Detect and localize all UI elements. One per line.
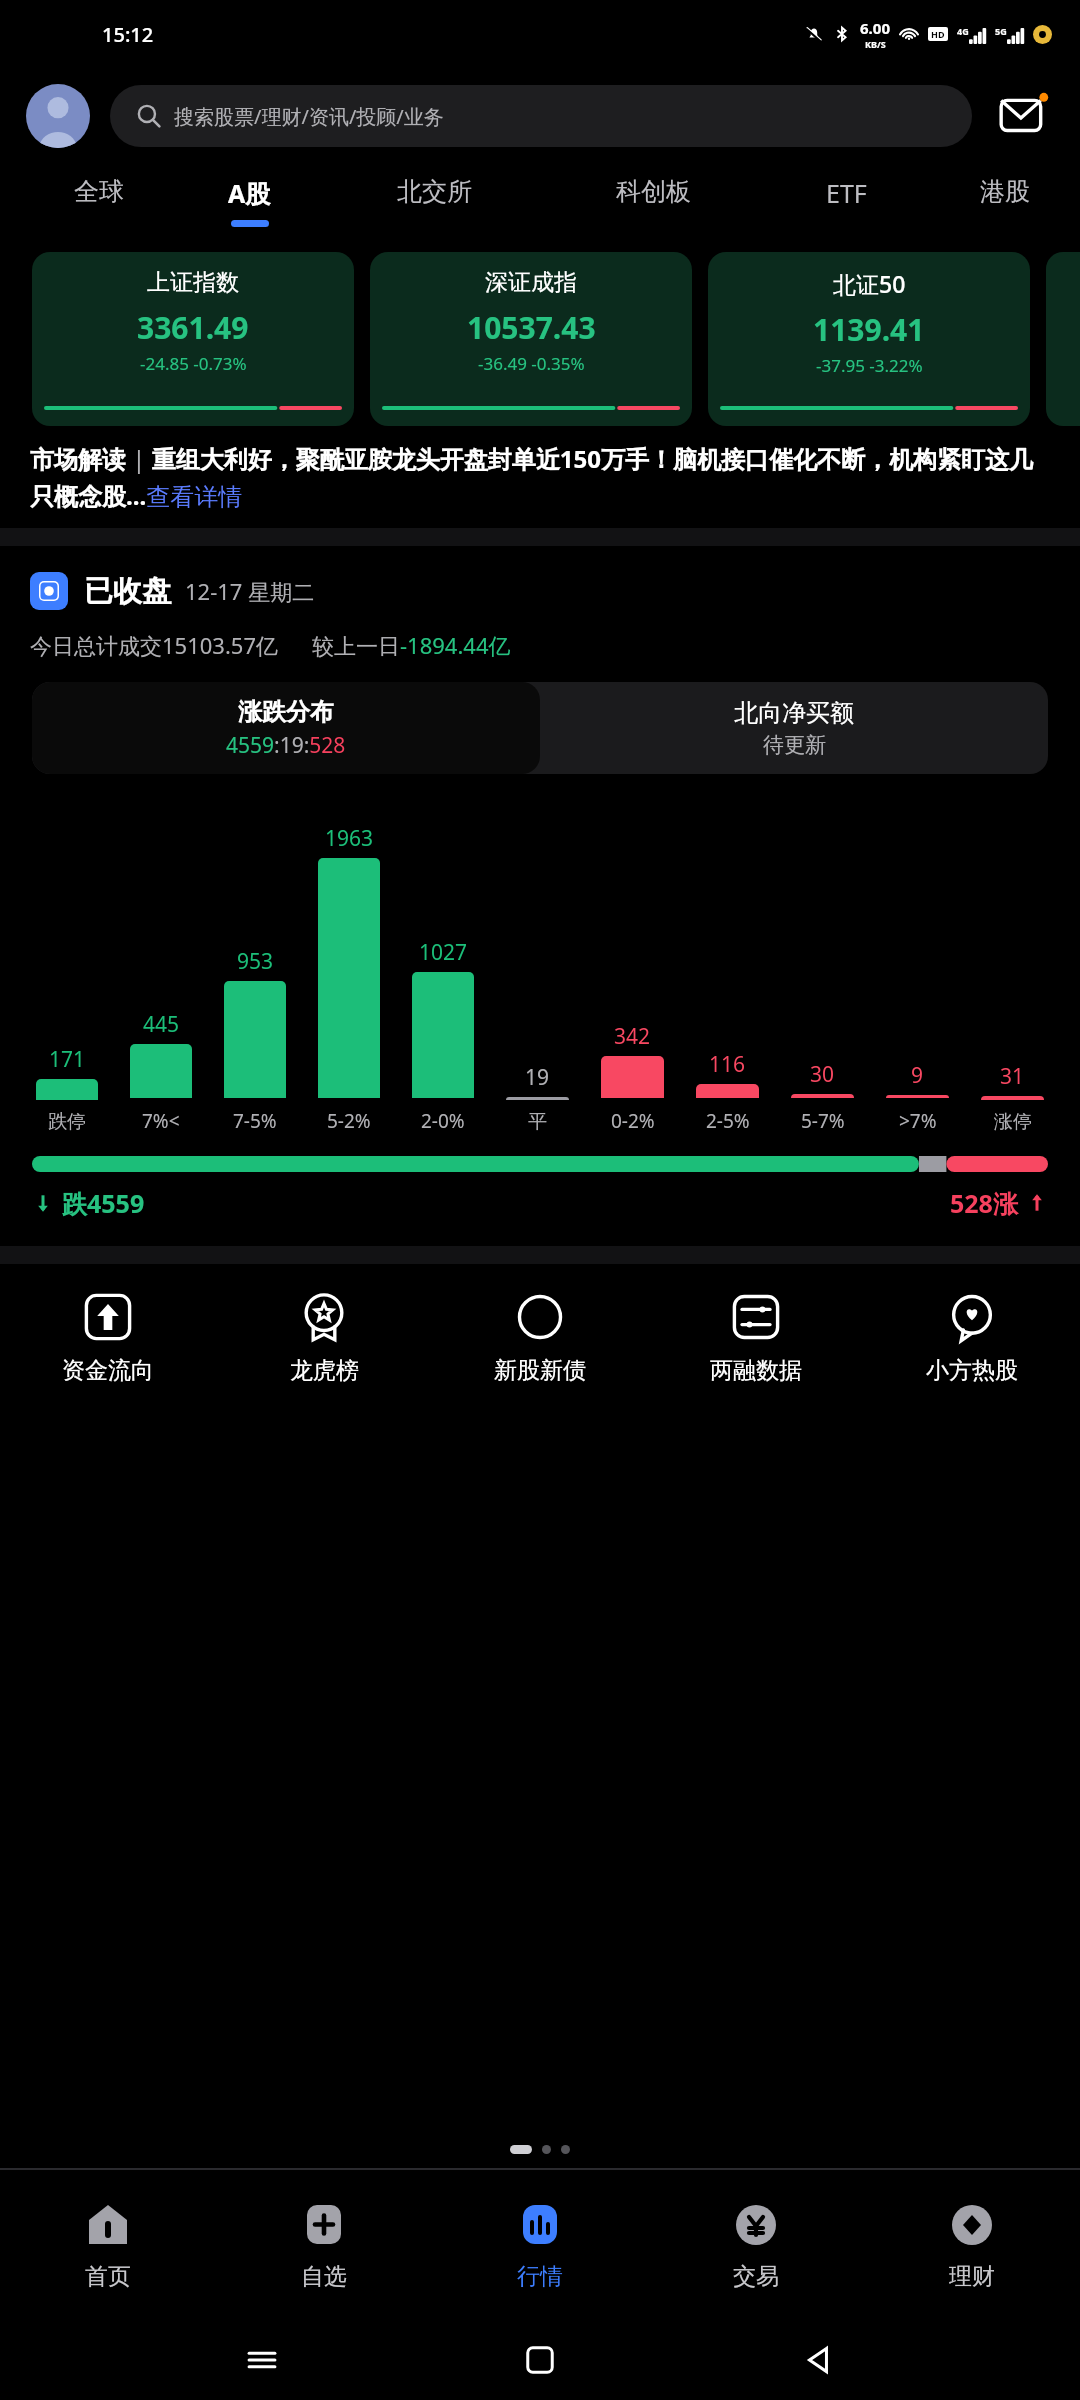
staticText: 北证50: [833, 268, 906, 299]
staticText: 搜索股票/理财/资讯/投顾/业务: [174, 103, 444, 130]
button[interactable]: 小方热股: [864, 1290, 1080, 1385]
staticText: -36.49 -0.35%: [478, 352, 585, 375]
staticText: 跌4559: [62, 1186, 145, 1220]
button[interactable]: 科创板: [544, 164, 763, 252]
staticText: 龙虎榜: [290, 1356, 359, 1385]
staticText: 31: [1000, 1062, 1025, 1091]
staticText: 资金流向: [62, 1356, 154, 1385]
button[interactable]: 上证指数: [32, 252, 354, 426]
staticText: 19: [525, 1063, 550, 1092]
button[interactable]: 自选: [216, 2170, 432, 2320]
button[interactable]: Profile: [26, 84, 90, 148]
button[interactable]: 涨跌分布: [32, 682, 540, 774]
button[interactable]: 30: [775, 798, 870, 1138]
staticText: 北交所: [397, 176, 472, 207]
button[interactable]: 31: [965, 798, 1060, 1138]
staticText: 两融数据: [710, 1356, 802, 1385]
staticText: KB/S: [865, 38, 886, 50]
staticText: -24.85 -0.73%: [140, 352, 247, 375]
button[interactable]: 港股: [929, 164, 1080, 252]
staticText: 自选: [301, 2262, 347, 2291]
staticText: 5-7%: [801, 1108, 845, 1134]
staticText: 北向净买额: [734, 698, 854, 728]
button[interactable]: 北交所: [325, 164, 544, 252]
staticText: 171: [49, 1045, 86, 1074]
staticText: 342: [614, 1022, 651, 1051]
staticText: 6.00: [860, 18, 890, 38]
other: Back: [802, 2343, 836, 2377]
staticText: 10537.43: [467, 307, 596, 348]
staticText: 12-17 星期二: [185, 576, 315, 606]
staticText: 涨停: [994, 1110, 1032, 1134]
staticText: ETF: [826, 176, 867, 210]
button[interactable]: 龙虎榜: [216, 1290, 432, 1385]
button[interactable]: 两融数据: [648, 1290, 864, 1385]
staticText: 市场解读 | 重组大利好，聚酰亚胺龙头开盘封单近150万手！脑机接口催化不断，机…: [30, 442, 1050, 512]
staticText: 平: [528, 1110, 547, 1134]
staticText: 跌停: [48, 1110, 86, 1134]
button[interactable]: 资金流向: [0, 1290, 216, 1385]
button[interactable]: 新股新债: [432, 1290, 648, 1385]
staticText: 528涨: [950, 1186, 1018, 1220]
staticText: 较上一日-1894.44亿: [312, 630, 511, 660]
button[interactable]: 1963: [302, 798, 396, 1138]
button[interactable]: 953: [208, 798, 302, 1138]
staticText: 15:12: [102, 21, 154, 48]
staticText: 953: [237, 947, 274, 976]
staticText: 2-0%: [421, 1108, 465, 1134]
staticText: 5G: [995, 25, 1007, 37]
staticText: 交易: [733, 2262, 779, 2291]
staticText: 涨跌分布: [238, 697, 334, 727]
button[interactable]: 理财: [864, 2170, 1080, 2320]
staticText: >7%: [899, 1108, 937, 1134]
button[interactable]: 深证成指: [370, 252, 692, 426]
button[interactable]: 北证50: [708, 252, 1030, 426]
button[interactable]: 19: [490, 798, 585, 1138]
staticText: 3361.49: [137, 307, 249, 348]
staticText: 深证成指: [485, 268, 577, 297]
staticText: 4G: [957, 25, 969, 37]
button[interactable]: 首页: [0, 2170, 216, 2320]
button[interactable]: 1027: [396, 798, 490, 1138]
button[interactable]: 全球: [24, 164, 174, 252]
staticText: A股: [228, 176, 271, 210]
staticText: 5-2%: [327, 1108, 371, 1134]
staticText: 上证指数: [147, 268, 239, 297]
button[interactable]: 116: [680, 798, 775, 1138]
staticText: -37.95 -3.22%: [816, 354, 923, 377]
staticText: 已收盘: [84, 573, 171, 610]
staticText: 445: [143, 1010, 180, 1039]
button[interactable]: 9: [870, 798, 965, 1138]
button[interactable]: 171: [20, 798, 114, 1138]
staticText: 科创板: [616, 176, 691, 207]
staticText: 新股新债: [494, 1356, 586, 1385]
button[interactable]: 行情: [432, 2170, 648, 2320]
staticText: 全球: [74, 176, 124, 207]
staticText: 7-5%: [233, 1108, 277, 1134]
staticText: 待更新: [763, 732, 826, 758]
staticText: 0-2%: [611, 1108, 655, 1134]
staticText: 9: [911, 1061, 924, 1090]
button[interactable]: 市场解读 | 重组大利好，聚酰亚胺龙头开盘封单近150万手！脑机接口催化不断，机…: [30, 442, 1050, 512]
staticText: 小方热股: [926, 1356, 1018, 1385]
staticText: 1963: [325, 824, 374, 853]
button[interactable]: 北向净买额: [540, 682, 1048, 774]
staticText: 1027: [419, 938, 468, 967]
staticText: 4559:19:528: [226, 731, 346, 760]
staticText: 30: [810, 1060, 835, 1089]
staticText: 2-5%: [706, 1108, 750, 1134]
button[interactable]: 交易: [648, 2170, 864, 2320]
button[interactable]: Messages: [992, 85, 1054, 147]
button[interactable]: 搜索股票/理财/资讯/投顾/业务: [110, 85, 972, 147]
button[interactable]: ETF: [763, 164, 929, 252]
button[interactable]: 342: [585, 798, 680, 1138]
staticText: 1139.41: [813, 309, 925, 350]
staticText: HD: [931, 28, 945, 40]
button[interactable]: A股: [174, 164, 325, 252]
staticText: 今日总计成交15103.57亿: [30, 630, 278, 660]
button[interactable]: 445: [114, 798, 208, 1138]
staticText: 116: [709, 1050, 746, 1079]
other: Home: [523, 2343, 557, 2377]
staticText: 港股: [980, 176, 1030, 207]
staticText: 理财: [949, 2262, 995, 2291]
